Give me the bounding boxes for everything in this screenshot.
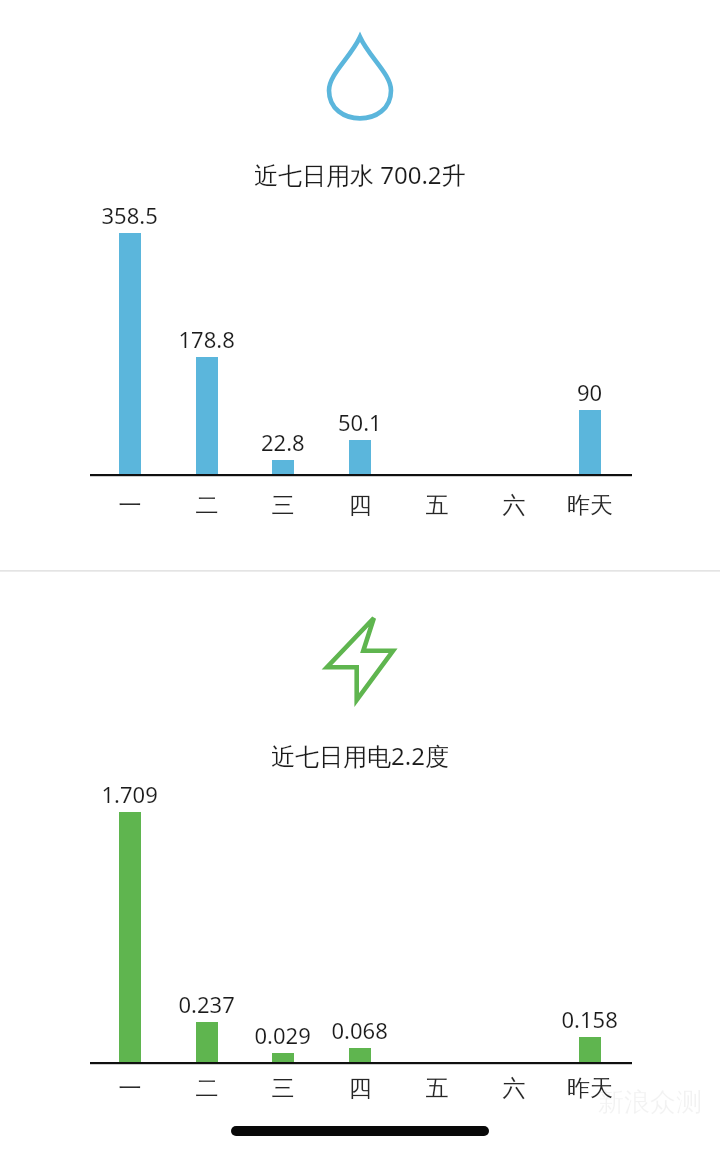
button[interactable]: 近七日用电 2.2度 bbox=[0, 570, 720, 1100]
button[interactable]: 近七日用水 700.2升 bbox=[0, 0, 720, 570]
